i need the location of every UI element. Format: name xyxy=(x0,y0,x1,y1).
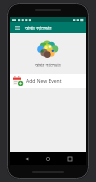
staticText: আমার ক্যালেন্ডার xyxy=(35,62,61,69)
button[interactable]: Add New Event xyxy=(10,74,86,88)
button[interactable]: Back xyxy=(22,154,32,164)
button[interactable]: Home xyxy=(43,154,53,164)
button[interactable]: Recent apps xyxy=(65,154,75,164)
button[interactable]: Open navigation menu xyxy=(13,23,22,32)
staticText: Add New Event xyxy=(26,78,62,85)
other: App logo xyxy=(36,41,60,58)
staticText: আমার ক্যালেন্ডার xyxy=(25,24,52,31)
